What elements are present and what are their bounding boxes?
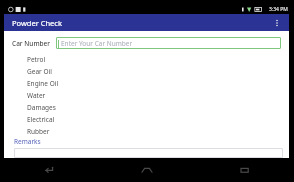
- button[interactable]: Rubber: [4, 125, 289, 137]
- button[interactable]: [14, 148, 283, 158]
- staticText: Remarks: [14, 137, 41, 146]
- staticText: Engine Oil: [27, 79, 59, 88]
- button[interactable]: Home: [98, 158, 196, 182]
- button[interactable]: More options: [269, 15, 285, 31]
- staticText: Enter Your Car Number: [61, 39, 133, 48]
- staticText: Petrol: [27, 55, 46, 64]
- staticText: 3:34 PM: [269, 6, 288, 13]
- staticText: Gear Oil: [27, 67, 52, 76]
- staticText: Powder Check: [12, 18, 62, 28]
- button[interactable]: Damages: [4, 101, 289, 113]
- button[interactable]: Enter Your Car Number: [56, 37, 281, 49]
- button[interactable]: Engine Oil: [4, 77, 289, 89]
- staticText: Electrical: [27, 115, 55, 124]
- button[interactable]: Back: [0, 158, 98, 182]
- staticText: Rubber: [27, 127, 50, 136]
- button[interactable]: Petrol: [4, 53, 289, 65]
- button[interactable]: Electrical: [4, 113, 289, 125]
- staticText: Water: [27, 91, 46, 100]
- button[interactable]: Recent apps: [196, 158, 294, 182]
- staticText: Damages: [27, 103, 56, 112]
- staticText: Car Number: [12, 39, 51, 48]
- button[interactable]: Water: [4, 89, 289, 101]
- button[interactable]: Gear Oil: [4, 65, 289, 77]
